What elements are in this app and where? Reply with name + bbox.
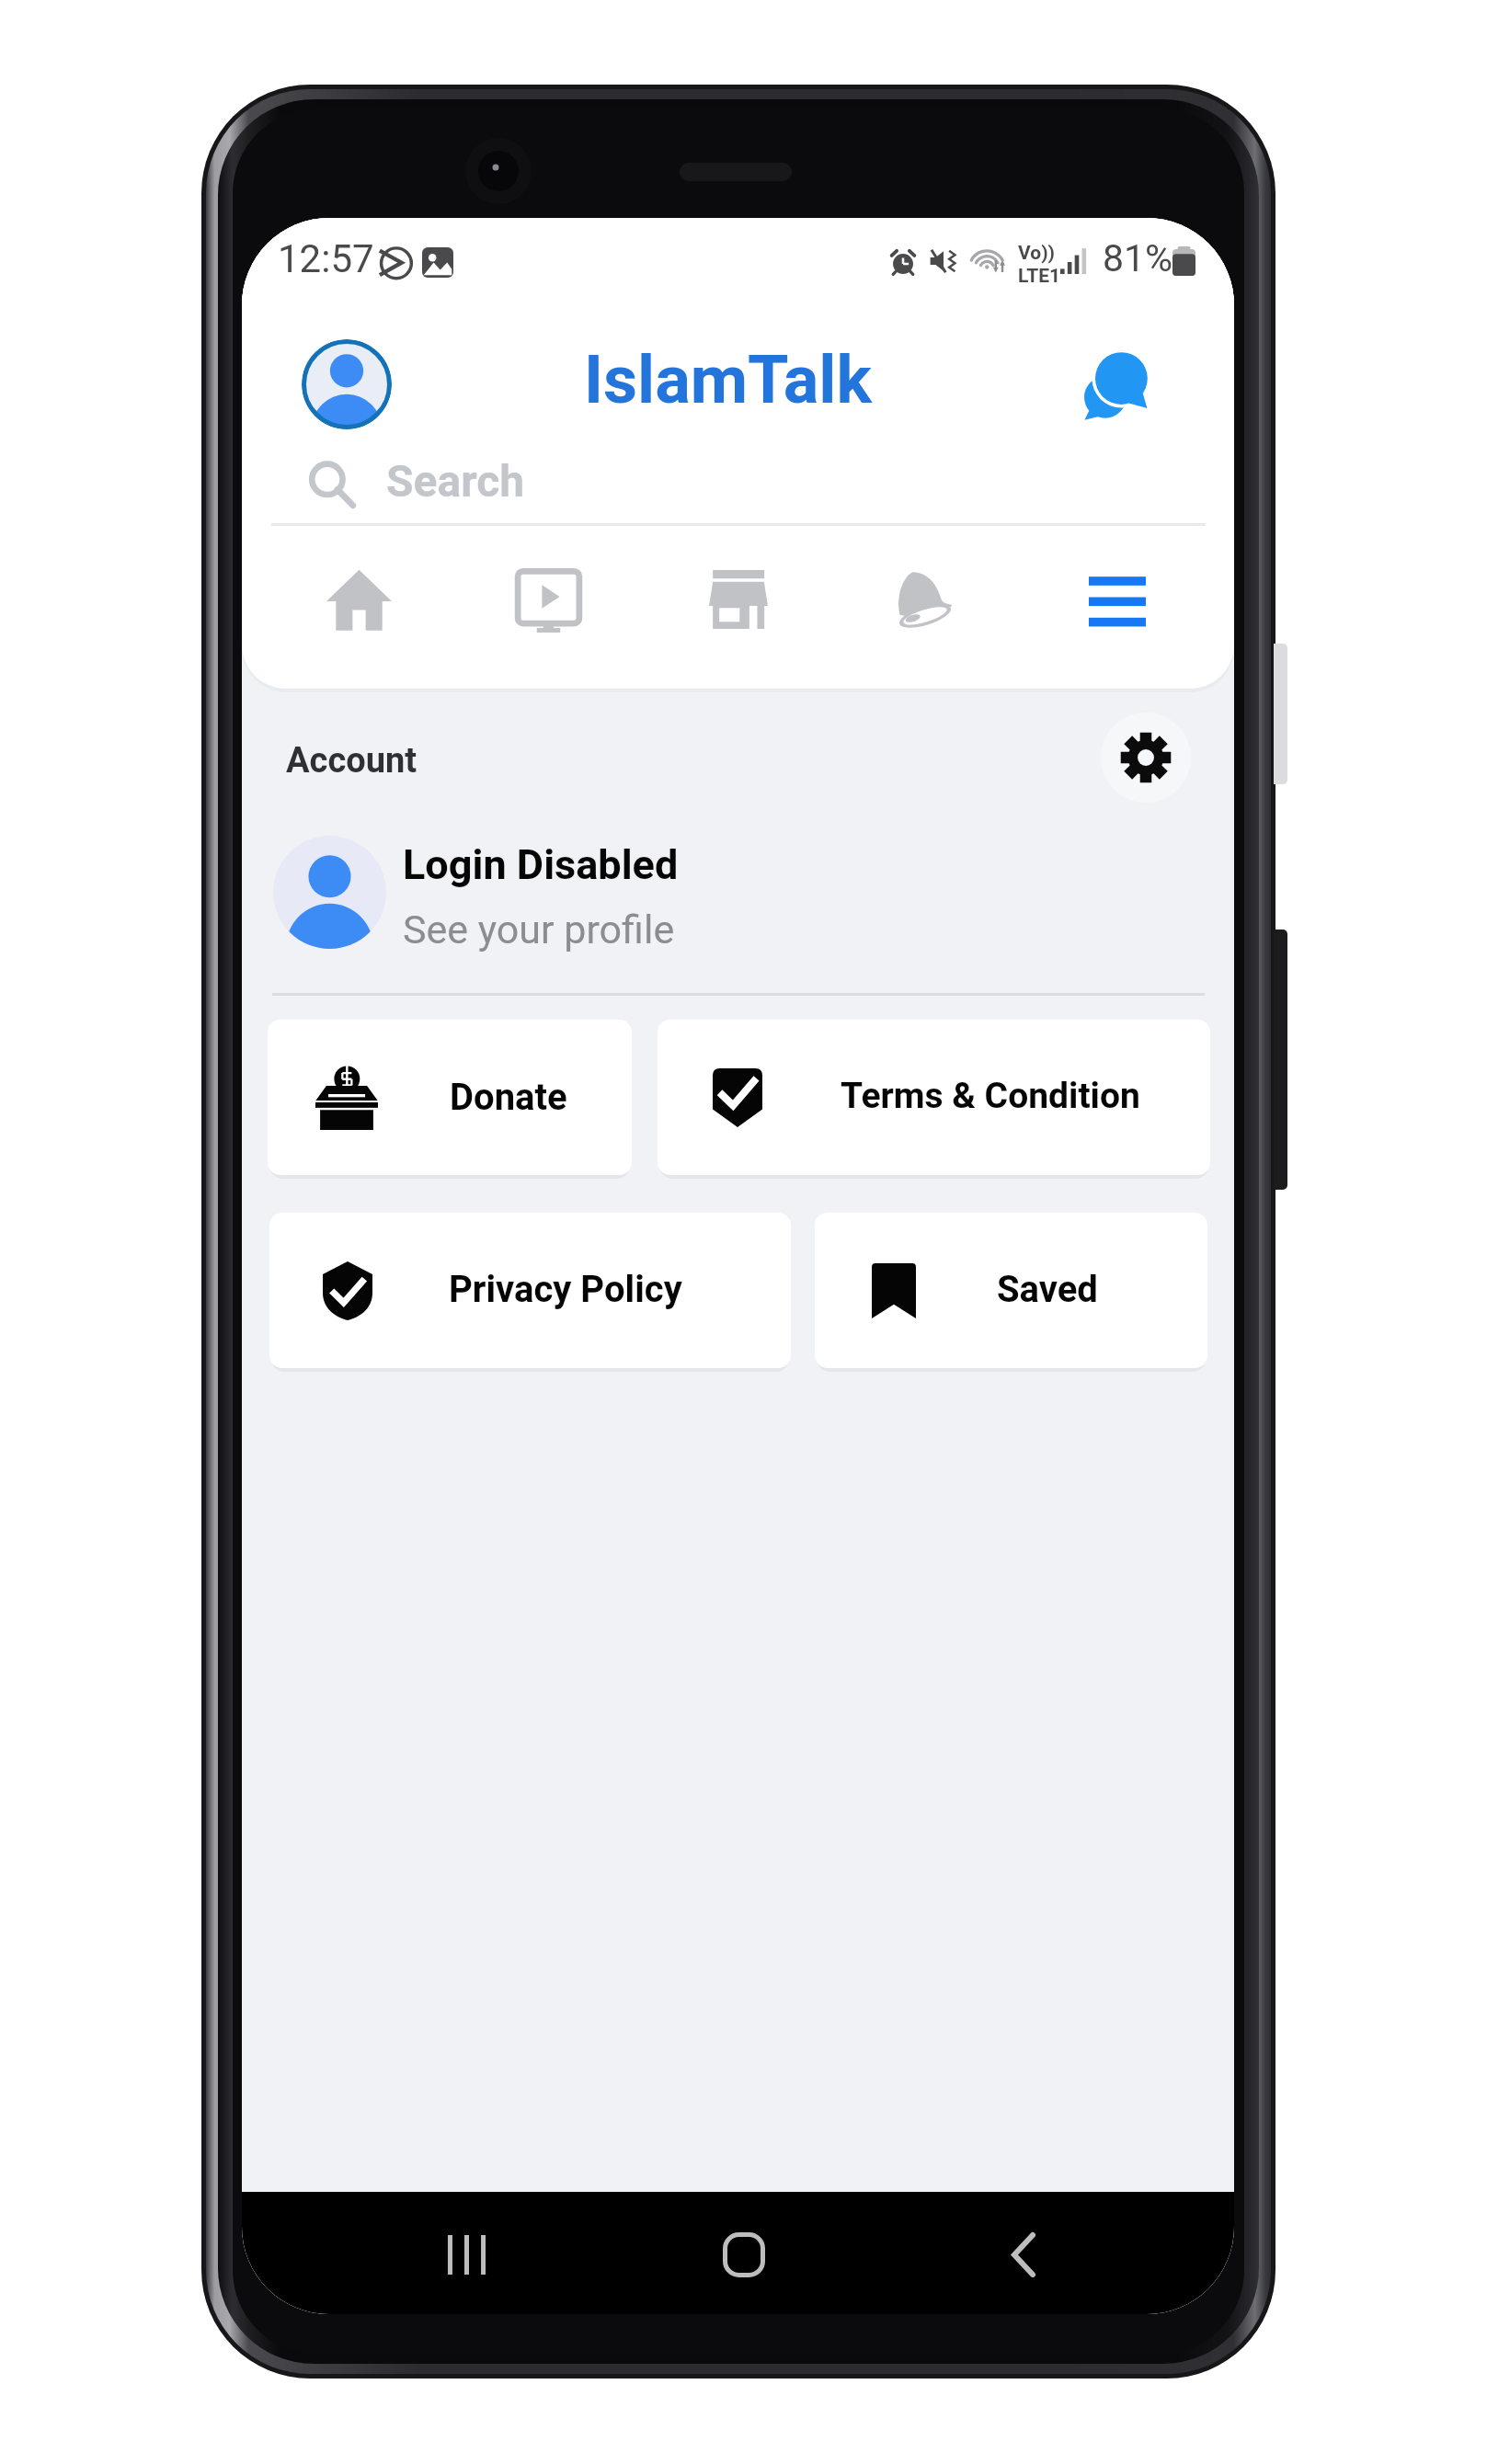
- button[interactable]: Privacy Policy: [269, 1213, 791, 1368]
- button[interactable]: Donate: [268, 1020, 632, 1175]
- button[interactable]: Saved: [815, 1213, 1207, 1368]
- staticText: LTE1: [1018, 265, 1061, 288]
- button[interactable]: Settings: [1101, 713, 1191, 803]
- staticText: IslamTalk: [584, 341, 872, 418]
- button[interactable]: Home: [698, 2210, 790, 2299]
- staticText: Donate: [450, 1076, 567, 1119]
- staticText: Terms & Condition: [841, 1075, 1140, 1117]
- button[interactable]: Messenger: [1071, 338, 1162, 429]
- staticText: Search: [386, 455, 525, 507]
- staticText: Privacy Policy: [449, 1268, 682, 1311]
- button[interactable]: Notifications: [832, 526, 1018, 673]
- button[interactable]: [242, 443, 1234, 517]
- button[interactable]: Video: [455, 526, 641, 673]
- button[interactable]: Back: [979, 2210, 1068, 2299]
- button[interactable]: Profile: [302, 339, 392, 429]
- button[interactable]: [242, 820, 1234, 963]
- button[interactable]: Marketplace: [646, 526, 831, 673]
- staticText: 81%: [1103, 236, 1173, 280]
- staticText: Account: [286, 740, 418, 781]
- button[interactable]: Recents: [422, 2213, 510, 2296]
- button[interactable]: Menu: [1024, 526, 1210, 673]
- button[interactable]: Terms & Condition: [658, 1020, 1210, 1175]
- button[interactable]: Home: [266, 526, 452, 673]
- staticText: Vo)): [1018, 242, 1055, 265]
- staticText: Saved: [997, 1268, 1098, 1311]
- staticText: Login Disabled: [403, 840, 679, 889]
- staticText: 12:57: [278, 236, 374, 281]
- staticText: See your profile: [403, 907, 675, 953]
